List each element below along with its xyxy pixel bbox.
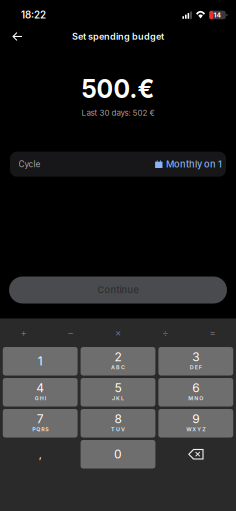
button[interactable]: × <box>94 318 142 347</box>
staticText: Set spending budget <box>72 31 164 42</box>
button[interactable]: Cycle <box>10 152 226 177</box>
button[interactable]: ÷ <box>142 318 189 347</box>
button[interactable]: 0 <box>81 440 155 468</box>
staticText: Continue <box>97 284 138 295</box>
button[interactable]: 9 <box>158 409 233 437</box>
button[interactable]: 3 <box>158 347 233 375</box>
button[interactable]: 1 <box>3 347 78 375</box>
button[interactable]: 6 <box>158 378 233 406</box>
button[interactable]: 2 <box>81 347 155 375</box>
staticText: × <box>115 327 121 338</box>
staticText: 3 <box>192 349 199 364</box>
staticText: 2 <box>114 349 121 364</box>
staticText: Monthly on 1 <box>166 159 222 170</box>
staticText: 14 <box>213 11 221 19</box>
staticText: 7 <box>37 411 44 426</box>
staticText: J K L <box>112 395 124 401</box>
staticText: + <box>21 327 27 338</box>
staticText: 1 <box>38 354 43 368</box>
staticText: 8 <box>114 411 121 426</box>
staticText: 6 <box>192 380 199 395</box>
staticText: , <box>39 448 42 461</box>
staticText: – <box>68 327 73 338</box>
button[interactable]: 5 <box>81 378 155 406</box>
staticText: 5 <box>114 380 121 395</box>
staticText: Cycle <box>18 159 40 169</box>
button[interactable] <box>158 440 233 468</box>
staticText: 4 <box>36 380 44 395</box>
button[interactable]: – <box>47 318 94 347</box>
staticText: ÷ <box>162 327 168 338</box>
staticText: D E F <box>190 364 202 370</box>
staticText: 9 <box>192 411 199 426</box>
button[interactable]: = <box>189 318 236 347</box>
button[interactable]: 8 <box>81 409 155 437</box>
staticText: 500.€ <box>81 74 154 104</box>
button[interactable]: 7 <box>3 409 78 437</box>
staticText: T U V <box>111 426 125 432</box>
staticText: A B C <box>111 364 125 370</box>
button[interactable]: + <box>0 318 47 347</box>
staticText: 0 <box>114 447 122 461</box>
button[interactable]: , <box>3 440 78 468</box>
staticText: M N O <box>188 395 203 401</box>
staticText: P Q R S <box>32 426 48 432</box>
staticText: 18:22 <box>21 9 46 21</box>
staticText: W X Y Z <box>186 426 205 432</box>
staticText: = <box>209 327 215 338</box>
button[interactable]: Back <box>7 25 27 47</box>
staticText: G H I <box>35 395 46 401</box>
button[interactable]: 4 <box>3 378 78 406</box>
button[interactable]: Continue <box>9 276 227 303</box>
staticText: Last 30 days: 502 € <box>81 108 154 118</box>
